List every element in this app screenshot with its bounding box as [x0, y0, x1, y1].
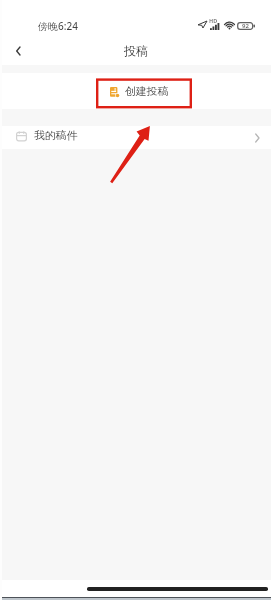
- staticText: 92: [242, 22, 249, 30]
- staticText: 我的稿件: [34, 129, 78, 143]
- staticText: 投稿: [124, 43, 148, 58]
- button[interactable]: 我的稿件: [0, 126, 271, 149]
- staticText: 傍晚6:24: [38, 19, 78, 33]
- button[interactable]: 创建投稿: [0, 73, 271, 109]
- staticText: 创建投稿: [125, 85, 169, 99]
- staticText: HD: [209, 17, 218, 24]
- button[interactable]: Back: [0, 37, 34, 65]
